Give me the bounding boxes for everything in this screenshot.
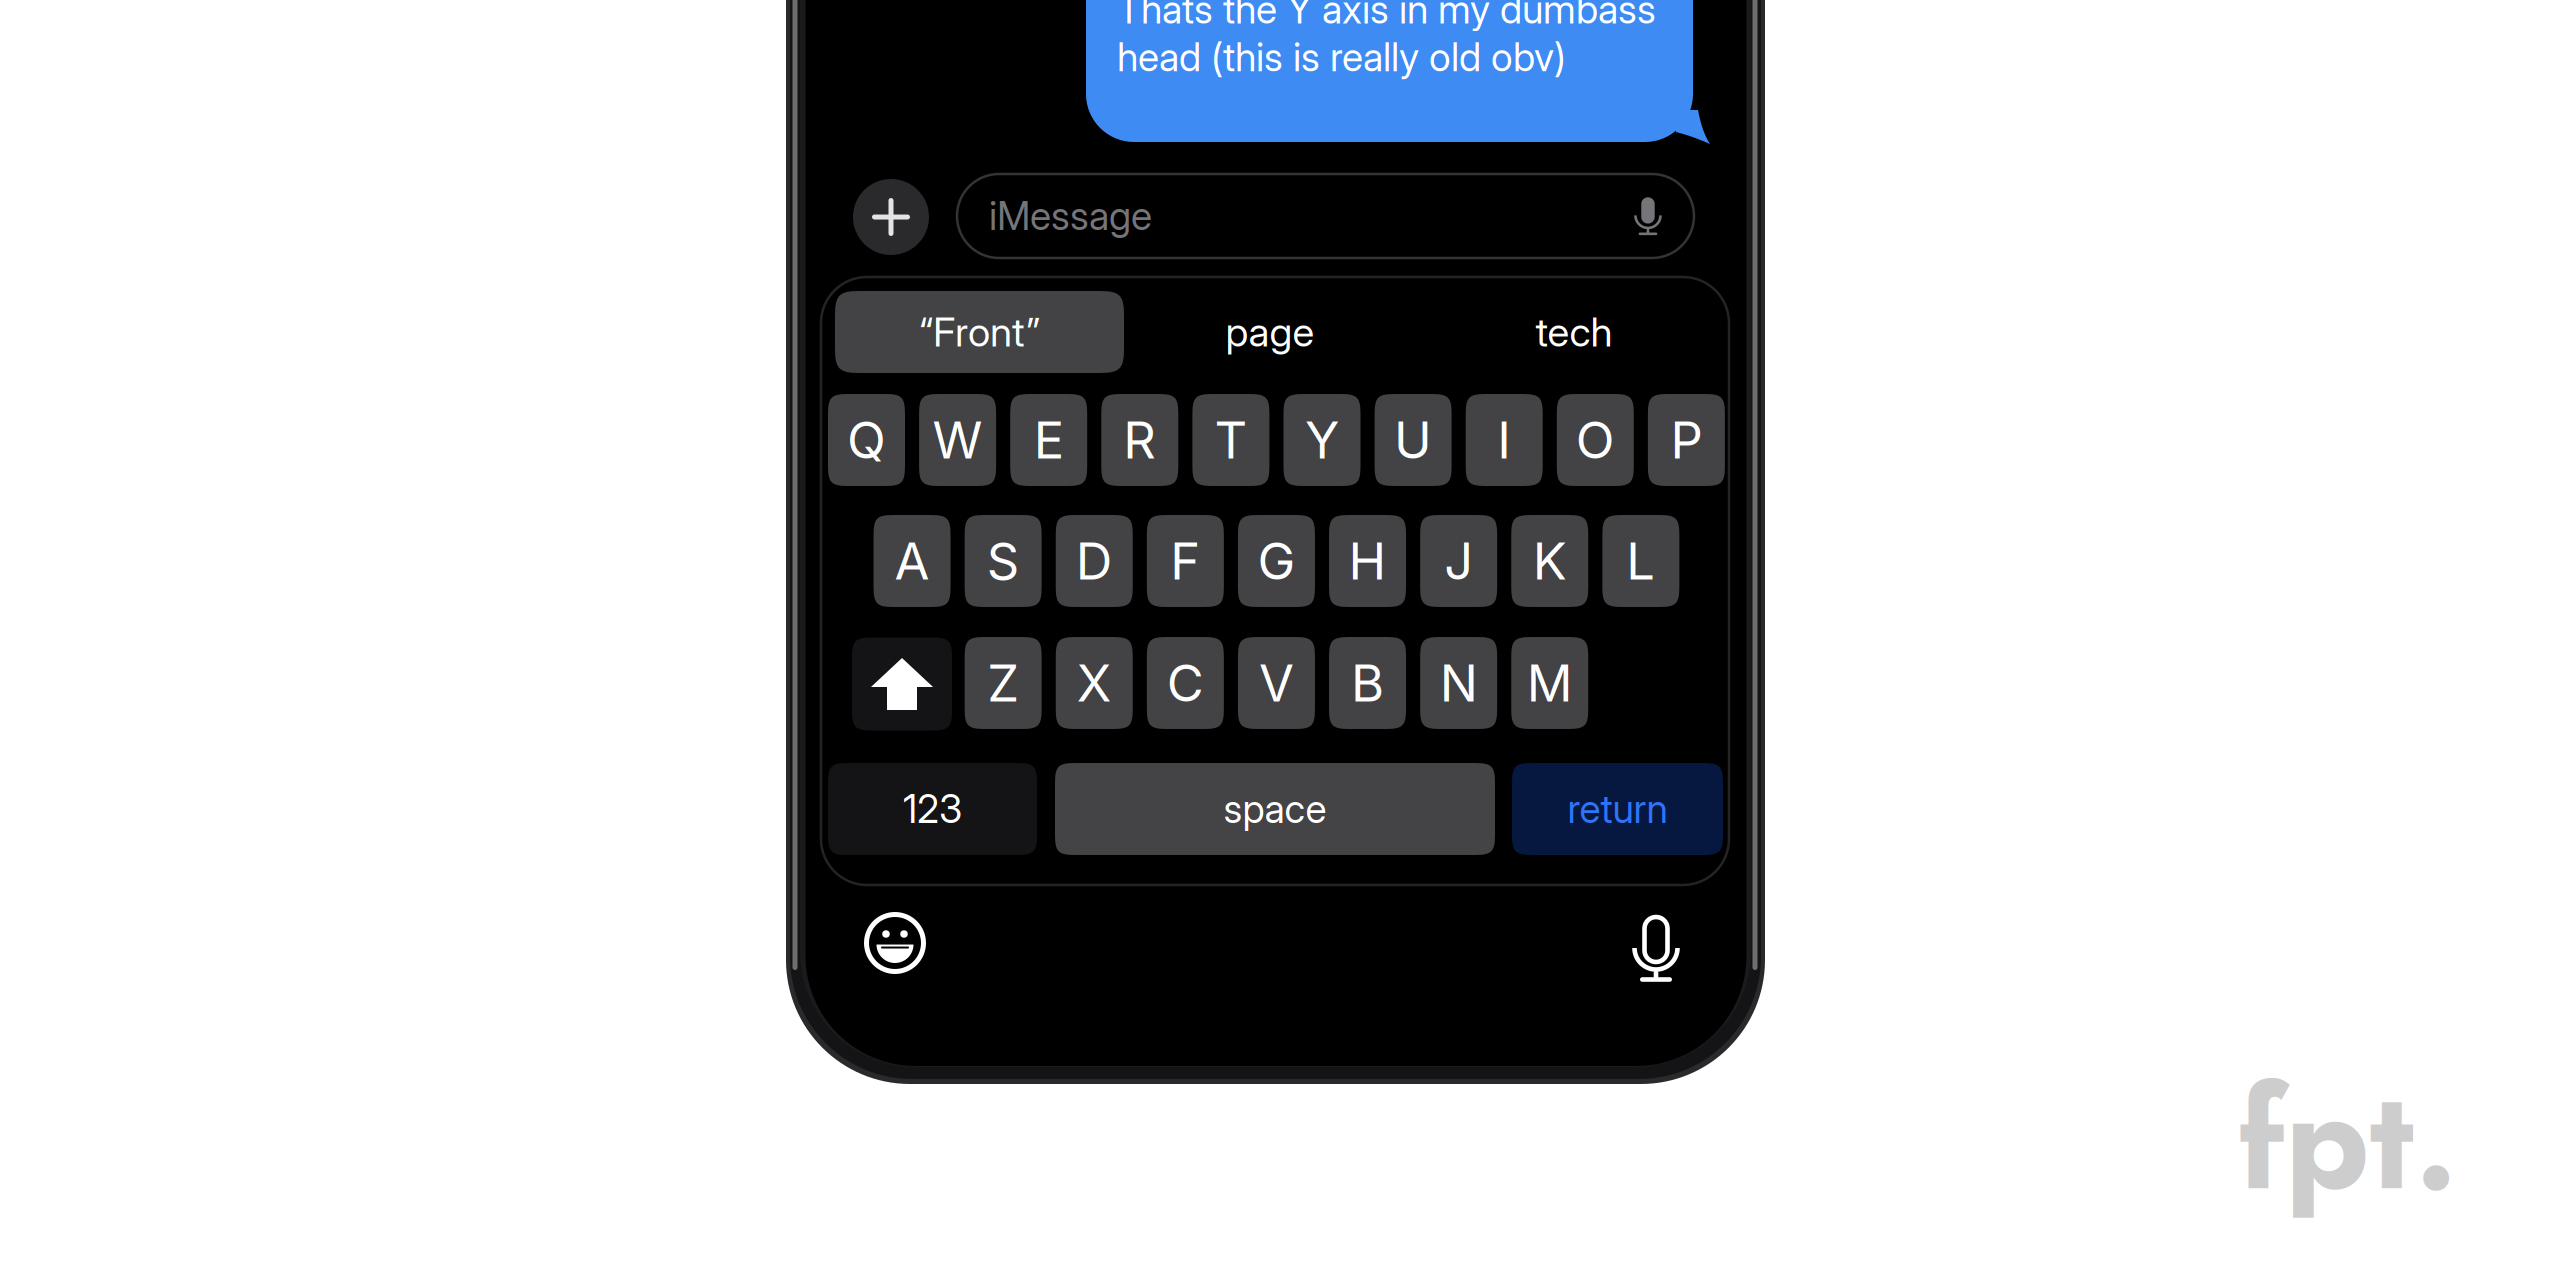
staticText: V bbox=[1259, 652, 1294, 714]
button[interactable]: N bbox=[1420, 637, 1497, 729]
staticText: X bbox=[1077, 652, 1112, 714]
button[interactable]: space bbox=[1055, 763, 1495, 855]
staticText: page bbox=[1225, 308, 1314, 356]
staticText: W bbox=[933, 409, 983, 471]
staticText: fpt. bbox=[2238, 1041, 2458, 1239]
button[interactable]: E bbox=[1010, 394, 1087, 486]
button[interactable]: Emoji keyboard bbox=[864, 912, 926, 974]
staticText: J bbox=[1444, 530, 1473, 592]
staticText: “Front” bbox=[919, 308, 1040, 356]
button[interactable]: H bbox=[1329, 515, 1406, 607]
staticText: D bbox=[1076, 530, 1113, 592]
button[interactable]: D bbox=[1056, 515, 1133, 607]
button[interactable]: P bbox=[1648, 394, 1725, 486]
button[interactable]: U bbox=[1375, 394, 1452, 486]
staticText: I bbox=[1497, 409, 1511, 471]
button[interactable]: X bbox=[1056, 637, 1133, 729]
button[interactable]: Shift bbox=[852, 637, 952, 730]
staticText: Q bbox=[847, 409, 886, 471]
button[interactable]: S bbox=[965, 515, 1042, 607]
button[interactable]: Y bbox=[1283, 394, 1360, 486]
button[interactable]: Z bbox=[965, 637, 1042, 729]
staticText: P bbox=[1670, 409, 1702, 471]
staticText: L bbox=[1626, 530, 1655, 592]
staticText: iMessage bbox=[989, 193, 1152, 239]
button[interactable]: T bbox=[1192, 394, 1269, 486]
button[interactable]: L bbox=[1602, 515, 1679, 607]
staticText: A bbox=[894, 530, 929, 592]
staticText: N bbox=[1440, 652, 1478, 714]
staticText: R bbox=[1123, 409, 1156, 471]
button[interactable]: A bbox=[873, 515, 950, 607]
button[interactable]: iMessage bbox=[957, 174, 1694, 258]
button[interactable]: tech bbox=[1464, 291, 1684, 373]
staticText: E bbox=[1034, 409, 1064, 471]
staticText: H bbox=[1348, 530, 1386, 592]
button[interactable]: Add attachment bbox=[853, 179, 929, 255]
staticText: Z bbox=[987, 652, 1019, 714]
staticText: K bbox=[1533, 530, 1567, 592]
staticText: C bbox=[1167, 652, 1204, 714]
staticText: S bbox=[987, 530, 1020, 592]
button[interactable]: J bbox=[1420, 515, 1497, 607]
staticText: B bbox=[1351, 652, 1384, 714]
button[interactable]: page bbox=[1160, 291, 1380, 373]
button[interactable]: C bbox=[1147, 637, 1224, 729]
button[interactable]: K bbox=[1511, 515, 1588, 607]
button[interactable]: 123 bbox=[828, 763, 1037, 855]
staticText: T bbox=[1214, 409, 1247, 471]
button[interactable]: W bbox=[919, 394, 996, 486]
button[interactable]: V bbox=[1238, 637, 1315, 729]
button[interactable]: Dictation bbox=[1632, 916, 1680, 981]
staticText: F bbox=[1170, 530, 1200, 592]
staticText: O bbox=[1576, 409, 1615, 471]
button[interactable]: G bbox=[1238, 515, 1315, 607]
staticText: tech bbox=[1535, 308, 1612, 356]
staticText: space bbox=[1223, 786, 1326, 832]
button[interactable]: M bbox=[1511, 637, 1588, 729]
button[interactable]: R bbox=[1101, 394, 1178, 486]
staticText: head (this is really old obv) bbox=[1117, 34, 1566, 81]
button[interactable]: I bbox=[1466, 394, 1543, 486]
button[interactable]: B bbox=[1329, 637, 1406, 729]
button[interactable]: return bbox=[1512, 763, 1723, 855]
button[interactable]: O bbox=[1557, 394, 1634, 486]
button[interactable]: Q bbox=[828, 394, 905, 486]
staticText: Thats the Y axis in my dumbass bbox=[1117, 0, 1656, 33]
staticText: G bbox=[1257, 530, 1295, 592]
staticText: return bbox=[1567, 786, 1667, 832]
staticText: Y bbox=[1305, 409, 1339, 471]
staticText: 123 bbox=[903, 786, 962, 832]
staticText: M bbox=[1527, 652, 1573, 714]
staticText: U bbox=[1394, 409, 1432, 471]
button[interactable]: F bbox=[1147, 515, 1224, 607]
button[interactable]: “Front” bbox=[835, 291, 1124, 373]
